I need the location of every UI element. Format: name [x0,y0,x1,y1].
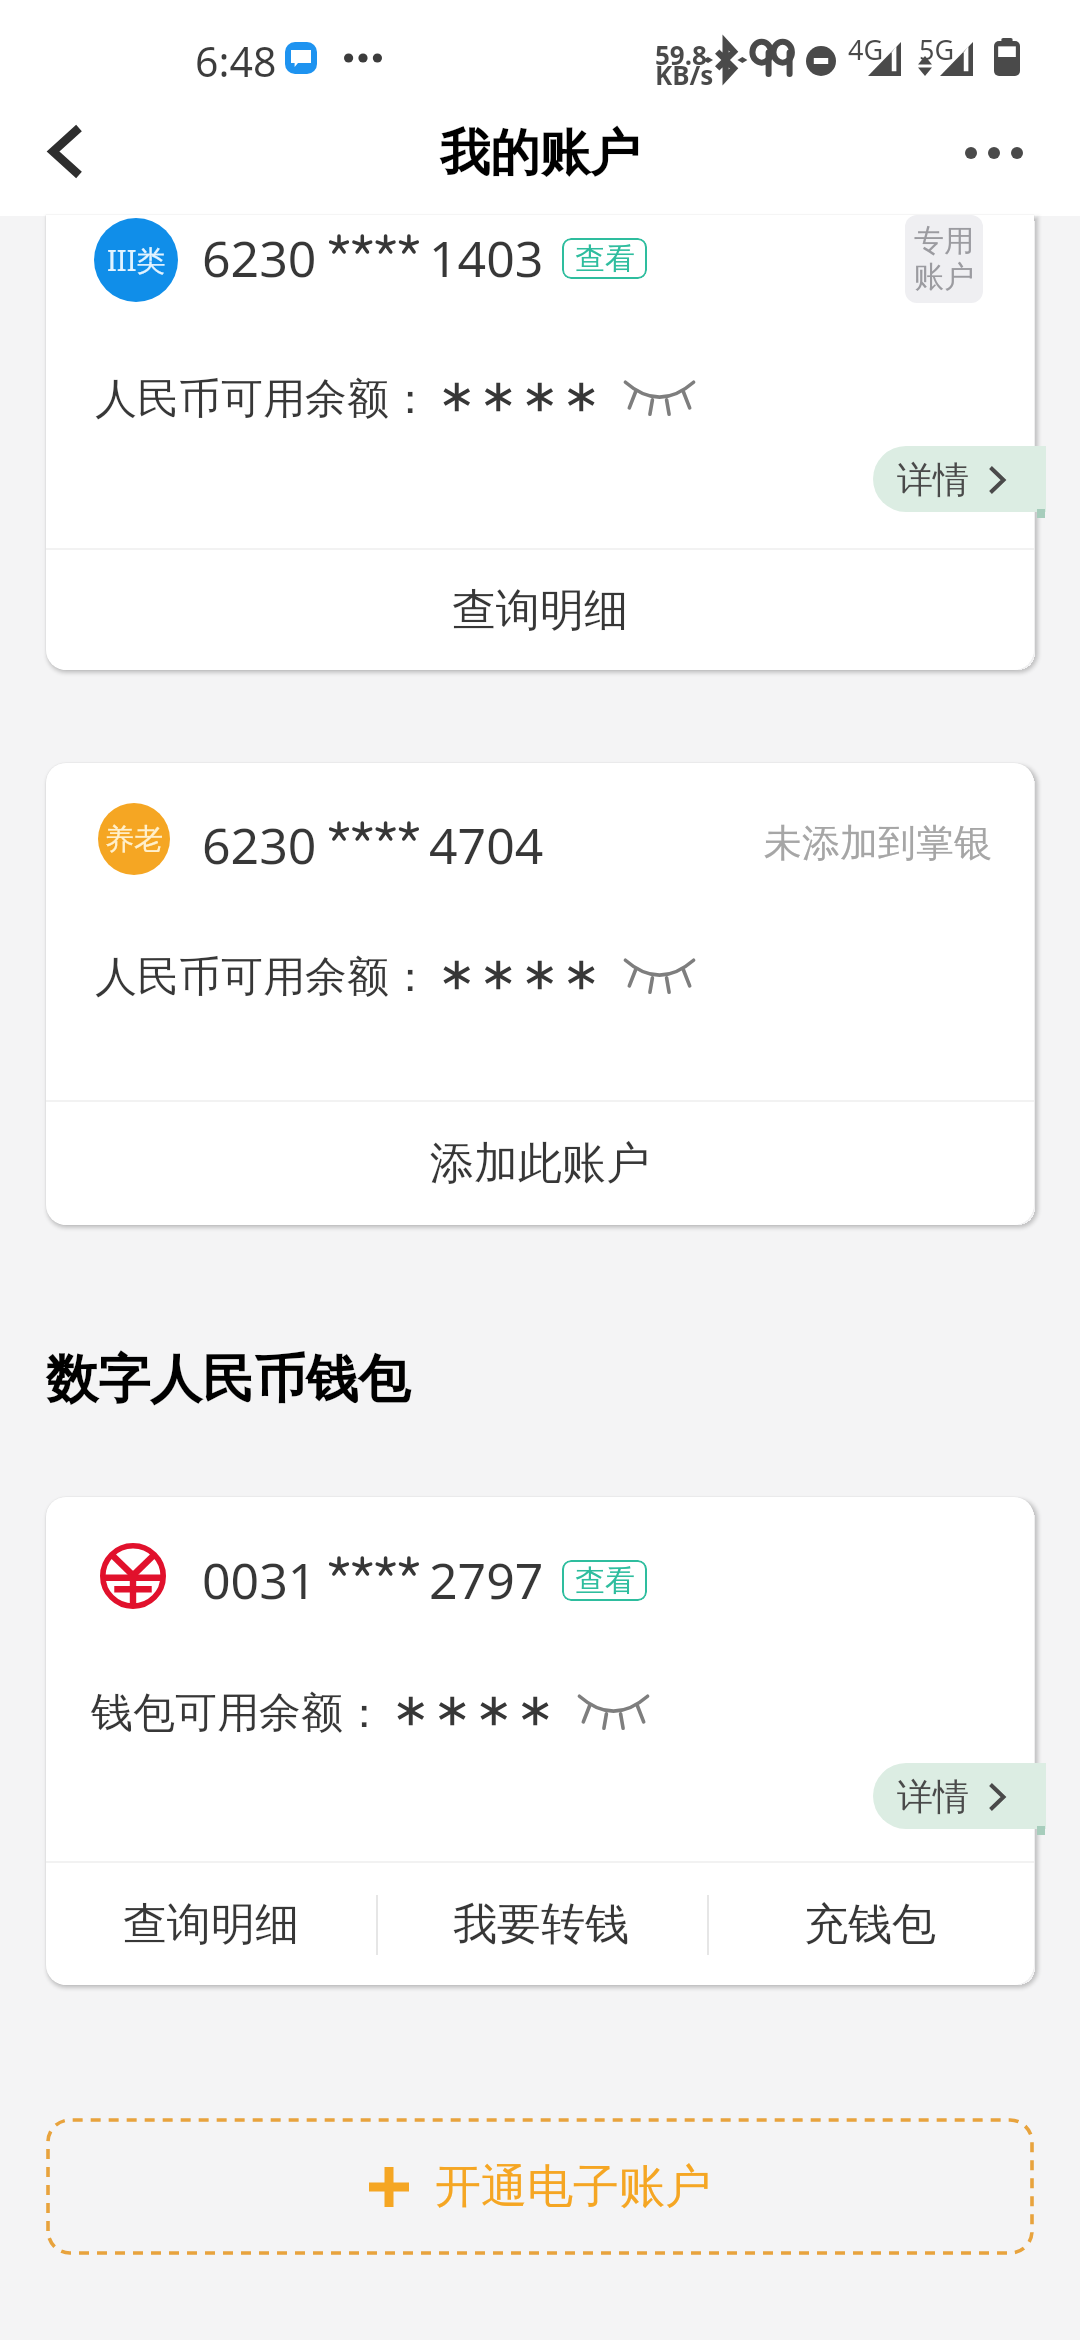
button[interactable]: 开通电子账户 [46,2118,1034,2255]
button[interactable]: 查看 [562,238,647,279]
staticText: 5G [919,31,955,68]
staticText: 养老 [105,821,163,858]
staticText: 6230 [202,224,317,292]
staticText: 专用 账户 [914,222,974,296]
staticText: 开通电子账户 [435,2158,711,2216]
button[interactable]: 查询明细 [46,1863,376,1985]
staticText: 0031 [202,1546,317,1614]
staticText: 查询明细 [452,583,628,638]
staticText: 添加此账户 [430,1136,650,1191]
staticText: 59.8 [655,37,707,72]
staticText: 查询明细 [123,1897,299,1952]
staticText: 6:48 [195,33,277,89]
staticText: 人民币可用余额： [95,951,431,1004]
staticText: 查看 [575,1562,635,1600]
staticText: 查看 [575,240,635,278]
staticText: 数字人民币钱包 [46,1347,410,1413]
button[interactable]: 充钱包 [705,1863,1034,1985]
staticText: 2797 [429,1546,544,1614]
button[interactable]: 详情 [873,446,1046,512]
staticText: 详情 [897,457,969,502]
staticText: 充钱包 [804,1897,936,1952]
staticText: 6230 [202,811,317,879]
staticText: 1403 [429,224,544,292]
button[interactable]: 添加此账户 [46,1102,1034,1225]
staticText: 我的账户 [440,122,640,185]
button[interactable]: 我要转钱 [376,1863,705,1985]
staticText: 详情 [897,1774,969,1819]
button[interactable]: Back [21,108,111,194]
staticText: 钱包可用余额： [91,1687,385,1740]
button[interactable]: 查询明细 [46,550,1034,670]
staticText: 我要转钱 [453,1897,629,1952]
staticText: 人民币可用余额： [95,373,431,426]
staticText: 未添加到掌银 [764,819,992,867]
staticText: 4G [848,31,884,68]
button[interactable]: 查看 [562,1560,647,1601]
button[interactable]: More options [951,110,1037,196]
staticText: III类 [107,240,166,280]
staticText: KB/s [655,57,714,92]
button[interactable]: 详情 [873,1763,1046,1829]
staticText: 4704 [429,811,544,879]
